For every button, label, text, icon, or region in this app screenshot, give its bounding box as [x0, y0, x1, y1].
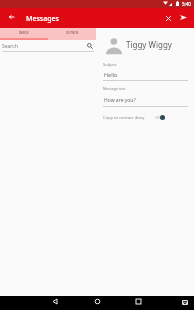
staticText: 5:40 — [182, 1, 191, 7]
button[interactable]: Change keyboard — [182, 300, 188, 305]
staticText: Hello — [104, 71, 118, 78]
staticText: INBOX — [19, 31, 29, 35]
button[interactable]: Copy to contact diary — [103, 112, 165, 123]
staticText: Copy to contact diary — [103, 115, 145, 121]
staticText: Subject — [103, 62, 117, 67]
button[interactable]: Recent apps — [130, 296, 146, 310]
staticText: Tiggy Wiggy — [126, 39, 172, 50]
button[interactable]: Discard — [160, 10, 177, 27]
button[interactable]: Home — [89, 296, 105, 310]
button[interactable]: Back — [47, 296, 63, 310]
button[interactable]: INBOX — [0, 28, 48, 38]
staticText: Message text — [103, 86, 126, 91]
button[interactable]: Send — [175, 9, 192, 26]
staticText: Search — [2, 43, 18, 50]
staticText: OUTBOX — [66, 31, 79, 35]
staticText: How are you? — [104, 97, 136, 104]
button[interactable]: OUTBOX — [48, 28, 96, 38]
button[interactable]: Navigate up — [3, 8, 20, 25]
button[interactable]: Search — [85, 41, 95, 51]
staticText: Messages — [26, 14, 60, 24]
